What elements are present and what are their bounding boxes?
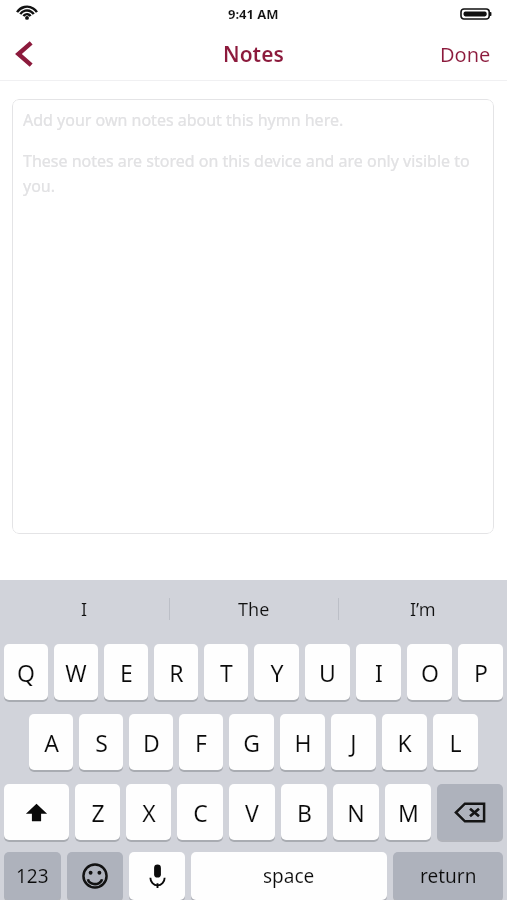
button[interactable]: 123 [4,852,61,900]
button[interactable]: Backspace [437,784,503,840]
staticText: F [195,727,207,758]
staticText: G [243,727,260,758]
button[interactable]: Back [0,28,60,80]
button[interactable]: I’m [339,580,507,638]
button[interactable]: I [0,580,169,638]
button[interactable]: H [280,714,325,770]
staticText: X [142,797,156,828]
staticText: H [294,727,312,758]
button[interactable]: W [54,644,98,700]
staticText: Y [270,657,284,688]
button[interactable]: Z [75,784,120,840]
staticText: I [81,597,88,622]
button[interactable]: D [129,714,173,770]
staticText: S [95,727,108,758]
staticText: V [245,797,259,828]
button[interactable]: Emoji [67,852,123,900]
staticText: R [169,657,184,688]
button[interactable]: T [204,644,248,700]
button[interactable]: O [407,644,452,700]
staticText: K [397,727,412,758]
staticText: L [449,727,462,758]
staticText: 123 [16,863,49,889]
button[interactable]: space [191,852,387,900]
staticText: W [65,657,87,688]
button[interactable]: Q [4,644,48,700]
staticText: D [143,727,160,758]
staticText: M [398,797,419,828]
button[interactable]: return [393,852,503,900]
button[interactable]: L [433,714,478,770]
staticText: P [474,657,488,688]
staticText: N [347,797,365,828]
button[interactable]: B [281,784,327,840]
staticText: space [263,863,315,889]
button[interactable]: C [177,784,223,840]
button[interactable]: G [229,714,274,770]
button[interactable]: Y [254,644,299,700]
staticText: T [220,657,233,688]
button[interactable]: N [333,784,379,840]
staticText: The [238,597,270,622]
staticText: I’m [410,597,436,622]
staticText: C [193,797,208,828]
staticText: U [319,657,336,688]
button[interactable]: The [170,580,338,638]
staticText: These notes are stored on this device an… [23,150,484,196]
button[interactable]: Shift [4,784,69,840]
button[interactable]: A [29,714,73,770]
staticText: Add your own notes about this hymn here. [23,109,344,131]
button[interactable]: V [229,784,275,840]
button[interactable]: R [154,644,198,700]
button[interactable]: K [382,714,427,770]
staticText: Notes [223,40,284,69]
button[interactable]: U [305,644,350,700]
staticText: O [421,657,439,688]
button[interactable]: X [126,784,171,840]
button[interactable]: J [331,714,376,770]
button[interactable]: E [104,644,148,700]
staticText: B [297,797,312,828]
button[interactable]: S [79,714,123,770]
button[interactable]: M [385,784,431,840]
staticText: E [120,657,133,688]
button[interactable]: Done [424,28,507,80]
staticText: return [420,863,477,889]
staticText: 9:41 AM [228,5,279,23]
button[interactable]: F [179,714,223,770]
staticText: Done [440,41,491,68]
staticText: A [44,727,59,758]
staticText: Q [17,657,35,688]
staticText: Z [91,797,105,828]
staticText: I [375,657,383,688]
button[interactable]: Dictation [129,852,185,900]
button[interactable]: P [458,644,503,700]
button[interactable]: I [356,644,401,700]
staticText: J [350,727,357,758]
button[interactable]: Add your own notes about this hymn here. [12,99,494,534]
